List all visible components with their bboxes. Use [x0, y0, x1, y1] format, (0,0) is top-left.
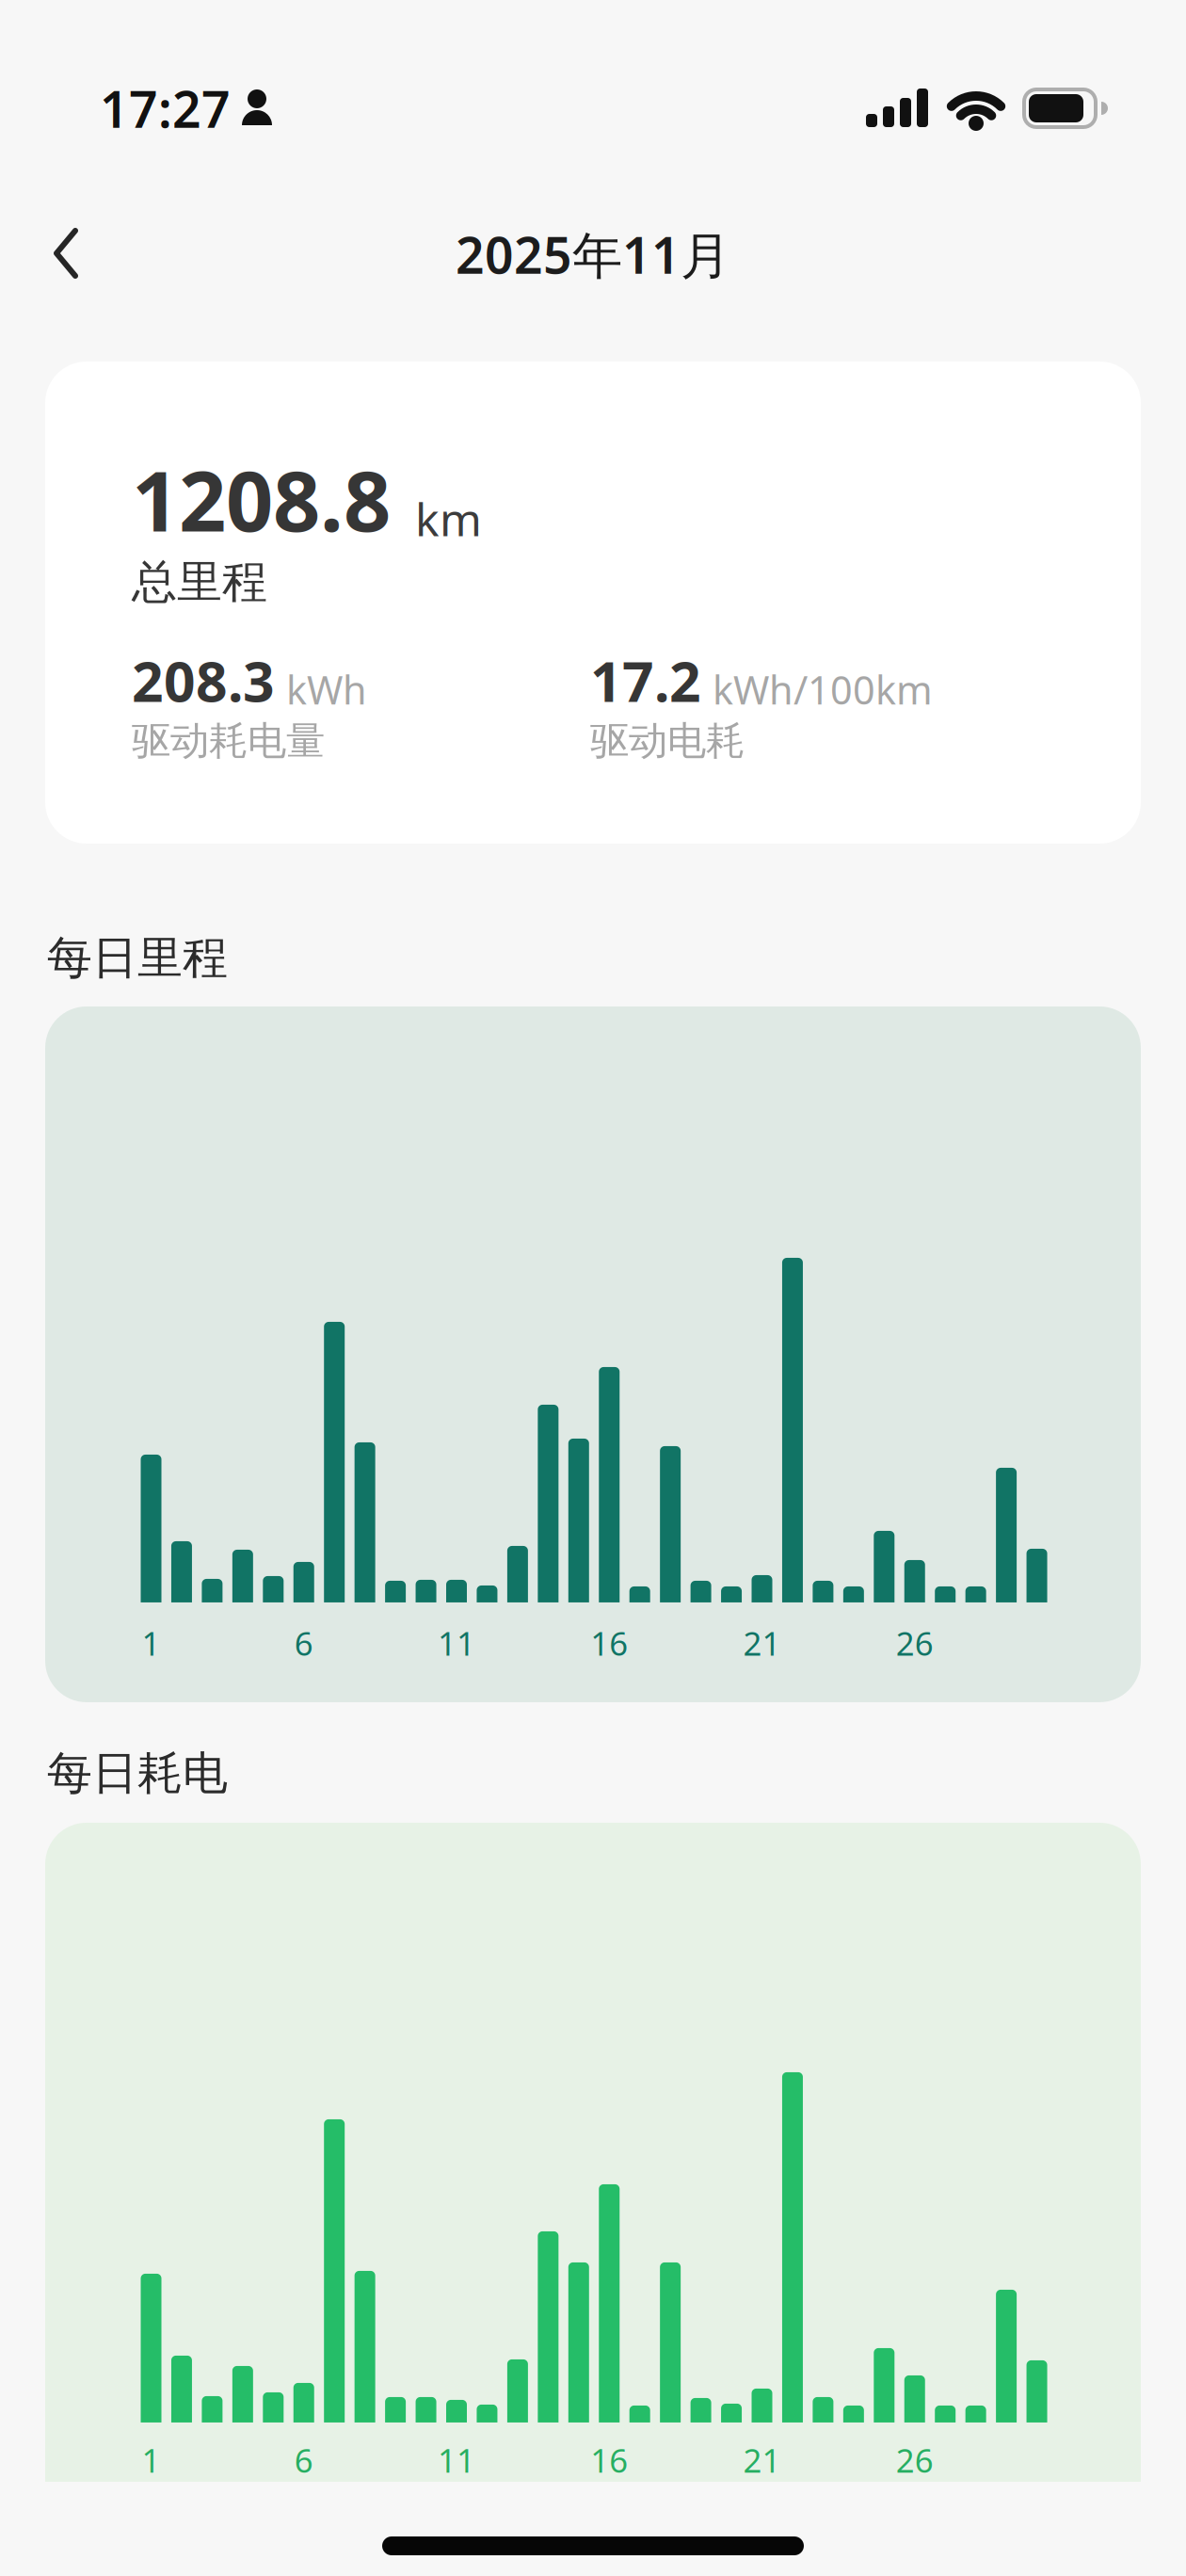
staticText: 26	[896, 2438, 934, 2482]
staticText: 驱动耗电量	[132, 717, 325, 765]
staticText: 21	[743, 1621, 781, 1665]
staticText: 驱动电耗	[590, 717, 745, 765]
staticText: km	[415, 489, 482, 549]
staticText: 17:27	[100, 75, 231, 142]
button[interactable]: Back	[36, 210, 96, 297]
staticText: 11	[438, 2438, 475, 2482]
staticText: 2025年11月	[456, 221, 730, 288]
staticText: 17.2	[590, 644, 701, 717]
staticText: kWh	[286, 664, 367, 715]
staticText: 21	[743, 2438, 781, 2482]
staticText: 每日耗电	[47, 1746, 228, 1801]
staticText: 1	[142, 2438, 160, 2482]
staticText: 11	[438, 1621, 475, 1665]
staticText: 26	[896, 1621, 934, 1665]
staticText: 16	[590, 1621, 628, 1665]
staticText: 1	[142, 1621, 160, 1665]
staticText: 1208.8	[132, 444, 391, 554]
staticText: 总里程	[132, 554, 267, 610]
staticText: 16	[590, 2438, 628, 2482]
staticText: 每日里程	[47, 930, 228, 986]
staticText: 6	[294, 1621, 313, 1665]
staticText: 6	[294, 2438, 313, 2482]
staticText: 208.3	[132, 644, 275, 717]
staticText: kWh/100km	[713, 664, 933, 715]
